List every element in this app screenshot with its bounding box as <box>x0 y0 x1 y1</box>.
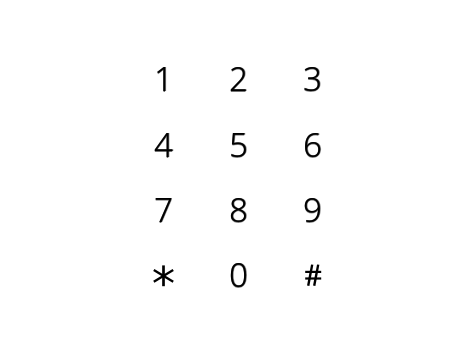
button[interactable]: 4 <box>126 113 201 178</box>
staticText: 4 <box>154 123 173 168</box>
button[interactable]: 3 <box>275 47 350 112</box>
staticText: 7 <box>154 187 173 232</box>
button[interactable]: 0 <box>201 243 276 308</box>
staticText: 2 <box>230 56 249 101</box>
staticText: 5 <box>229 123 248 168</box>
staticText: 1 <box>154 56 173 101</box>
staticText: 4 <box>154 122 173 167</box>
staticText: 8 <box>229 187 248 232</box>
staticText: 6 <box>303 122 322 167</box>
staticText: 1 <box>154 56 173 101</box>
button[interactable]: 5 <box>201 113 276 178</box>
staticText: 0 <box>230 252 249 297</box>
button[interactable]: 6 <box>275 113 350 178</box>
button[interactable]: 1 <box>126 47 201 112</box>
staticText: 7 <box>154 187 173 232</box>
staticText: 7 <box>154 187 173 232</box>
staticText: 8 <box>229 188 248 233</box>
button[interactable]: Pound key <box>275 243 350 308</box>
staticText: 7 <box>155 187 174 232</box>
staticText: 0 <box>229 252 248 297</box>
staticText: 8 <box>229 187 248 232</box>
staticText: 6 <box>303 122 322 167</box>
staticText: 8 <box>230 187 249 232</box>
staticText: 3 <box>303 57 322 102</box>
button[interactable]: 8 <box>201 178 276 243</box>
staticText: 3 <box>303 56 322 101</box>
staticText: 6 <box>303 123 322 168</box>
staticText: 5 <box>229 122 248 167</box>
staticText: 3 <box>304 56 323 101</box>
button[interactable]: 9 <box>275 178 350 243</box>
staticText: 5 <box>229 122 248 167</box>
staticText: 0 <box>229 252 248 297</box>
staticText: 3 <box>303 56 322 101</box>
staticText: 4 <box>154 122 173 167</box>
staticText: 8 <box>229 187 248 232</box>
button[interactable]: 7 <box>126 178 201 243</box>
button[interactable]: Star key <box>126 243 201 308</box>
staticText: 6 <box>304 122 323 167</box>
staticText: 2 <box>229 57 248 102</box>
staticText: 1 <box>154 57 173 102</box>
staticText: 1 <box>154 56 173 101</box>
staticText: 1 <box>155 56 174 101</box>
staticText: 5 <box>229 122 248 167</box>
staticText: 2 <box>229 56 248 101</box>
staticText: 9 <box>303 187 322 232</box>
staticText: 2 <box>229 56 248 101</box>
staticText: 4 <box>155 122 174 167</box>
staticText: 4 <box>154 122 173 167</box>
staticText: 0 <box>229 252 248 297</box>
staticText: 3 <box>303 56 322 101</box>
staticText: 0 <box>229 253 248 298</box>
button[interactable]: 2 <box>201 47 276 112</box>
staticText: 5 <box>230 122 249 167</box>
staticText: 2 <box>229 56 248 101</box>
staticText: 7 <box>154 188 173 233</box>
staticText: 9 <box>304 187 323 232</box>
staticText: 9 <box>303 187 322 232</box>
staticText: 9 <box>303 187 322 232</box>
staticText: 6 <box>303 122 322 167</box>
staticText: 9 <box>303 188 322 233</box>
